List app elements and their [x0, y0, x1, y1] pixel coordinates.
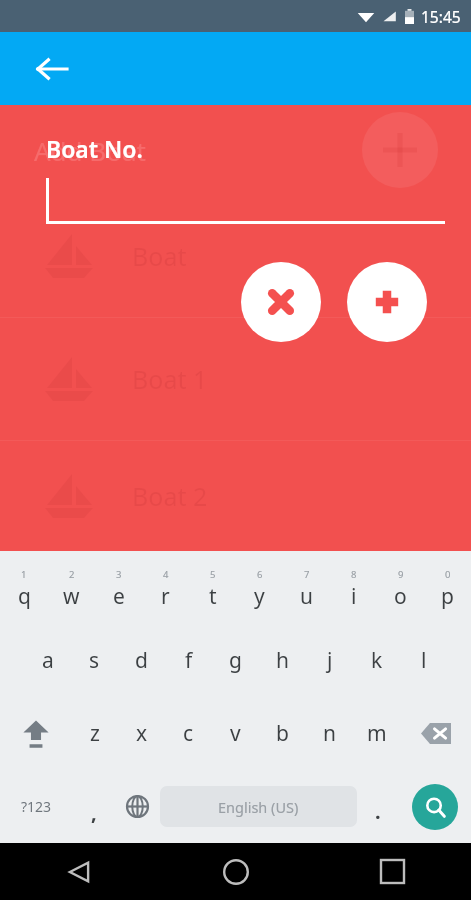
button[interactable]: Back	[28, 45, 76, 93]
staticText: c	[183, 719, 194, 748]
staticText: 6	[257, 568, 263, 581]
staticText: e	[113, 582, 125, 611]
button[interactable]: Backspace	[400, 697, 471, 770]
staticText: English (US)	[218, 797, 299, 817]
button[interactable]: n	[306, 697, 353, 770]
staticText: y	[254, 582, 265, 611]
staticText: 2	[69, 568, 75, 581]
button[interactable]: b	[259, 697, 306, 770]
button[interactable]: 6	[236, 551, 283, 624]
button[interactable]: Change language	[114, 770, 160, 843]
staticText: h	[276, 646, 289, 675]
button[interactable]: a	[24, 624, 71, 697]
staticText: u	[300, 582, 313, 611]
staticText: f	[185, 646, 193, 675]
staticText: Add Boat	[34, 133, 146, 168]
button[interactable]: Home	[157, 843, 314, 900]
button[interactable]: d	[118, 624, 165, 697]
button[interactable]: m	[353, 697, 400, 770]
button[interactable]: f	[165, 624, 212, 697]
button[interactable]: 3	[95, 551, 142, 624]
button[interactable]: g	[212, 624, 259, 697]
staticText: n	[323, 719, 336, 748]
button[interactable]: x	[118, 697, 165, 770]
staticText: 8	[351, 568, 357, 581]
staticText: l	[421, 646, 427, 675]
staticText: k	[371, 646, 383, 675]
staticText: a	[42, 646, 54, 675]
button[interactable]: Back	[0, 843, 157, 900]
button[interactable]: s	[71, 624, 118, 697]
button[interactable]: Recent apps	[314, 843, 471, 900]
staticText: q	[18, 582, 31, 611]
staticText: z	[90, 719, 100, 748]
staticText: p	[441, 582, 454, 611]
staticText: 0	[445, 568, 451, 581]
staticText: g	[229, 646, 242, 675]
button[interactable]: 8	[330, 551, 377, 624]
button[interactable]: k	[353, 624, 400, 697]
button[interactable]: z	[71, 697, 118, 770]
button[interactable]: English (US)	[160, 786, 357, 827]
staticText: j	[327, 646, 333, 675]
button[interactable]: h	[259, 624, 306, 697]
staticText: r	[161, 582, 170, 611]
button[interactable]: Add	[347, 262, 427, 342]
button[interactable]: c	[165, 697, 212, 770]
staticText: b	[276, 719, 289, 748]
staticText: ,	[91, 799, 97, 826]
button[interactable]: Boat	[0, 195, 471, 318]
staticText: Boat No.	[46, 133, 143, 164]
button[interactable]: ?123	[0, 770, 73, 843]
staticText: 15:45	[421, 6, 461, 27]
staticText: 7	[304, 568, 310, 581]
button[interactable]: v	[212, 697, 259, 770]
staticText: d	[135, 646, 148, 675]
button[interactable]: 5	[189, 551, 236, 624]
staticText: ?123	[21, 797, 52, 816]
staticText: 5	[210, 568, 216, 581]
button[interactable]: 4	[142, 551, 189, 624]
staticText: Boat 2	[132, 479, 208, 513]
staticText: 3	[116, 568, 122, 581]
staticText: i	[351, 582, 357, 611]
staticText: m	[367, 719, 387, 748]
staticText: .	[375, 798, 381, 825]
button[interactable]: 1	[0, 551, 48, 624]
button[interactable]: 0	[424, 551, 471, 624]
staticText: w	[63, 582, 80, 611]
button[interactable]: Cancel	[241, 262, 321, 342]
staticText: s	[89, 646, 100, 675]
button[interactable]: .	[357, 770, 398, 843]
button[interactable]: j	[306, 624, 353, 697]
button[interactable]: 7	[283, 551, 330, 624]
staticText: 4	[163, 568, 169, 581]
button[interactable]: 9	[377, 551, 424, 624]
staticText: Boat 1	[132, 362, 208, 396]
staticText: 1	[21, 568, 27, 581]
button[interactable]: Search	[412, 784, 458, 830]
staticText: 9	[398, 568, 404, 581]
button[interactable]: 2	[48, 551, 95, 624]
staticText: o	[394, 582, 407, 611]
button[interactable]: ,	[73, 770, 114, 843]
button[interactable]: Boat 1	[0, 318, 471, 441]
staticText: v	[230, 719, 241, 748]
button[interactable]: Add	[362, 112, 438, 188]
staticText: Boat	[132, 239, 187, 273]
button[interactable]: l	[400, 624, 447, 697]
staticText: t	[209, 582, 217, 611]
button[interactable]: Shift	[0, 697, 71, 770]
staticText: x	[136, 719, 148, 748]
